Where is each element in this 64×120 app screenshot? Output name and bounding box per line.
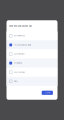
button[interactable]: Through a friend or family [6, 40, 57, 49]
staticText: Why did you select us? [9, 24, 32, 27]
button[interactable]: Advertisement [6, 49, 57, 58]
button[interactable]: Other [6, 77, 57, 86]
staticText: Search engine [14, 71, 25, 73]
staticText: Through a friend or family [14, 44, 31, 46]
staticText: Advertisement [14, 53, 24, 55]
button[interactable]: Social media [6, 58, 57, 68]
button[interactable]: Recommended [6, 31, 57, 40]
staticText: Submit [45, 92, 49, 94]
button[interactable]: Search engine [6, 68, 57, 77]
staticText: Recommended [14, 35, 25, 37]
button[interactable]: Submit [42, 91, 53, 95]
staticText: Social media [14, 62, 22, 64]
staticText: Other [14, 80, 18, 82]
